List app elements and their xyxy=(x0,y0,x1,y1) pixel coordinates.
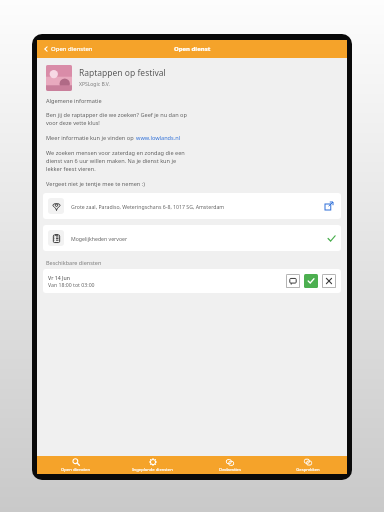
staticText: Gesprekken xyxy=(296,467,320,473)
staticText: XPSLogic B.V. xyxy=(79,81,110,88)
button[interactable]: Open diensten xyxy=(37,42,99,56)
staticText: Van 18:00 tot 03:00 xyxy=(48,281,95,288)
staticText: We zoeken mensen voor zaterdag en zondag… xyxy=(46,149,185,173)
button[interactable]: Accepteren xyxy=(304,274,318,288)
staticText: Open diensten xyxy=(61,467,90,473)
staticText: Vergeet niet je tentje mee te nemen :) xyxy=(46,180,145,188)
staticText: Algemene informatie xyxy=(46,97,102,105)
button[interactable]: Grote zaal, Paradiso, Weteringschans 6-8… xyxy=(43,193,341,219)
staticText: Meer informatie kun je vinden op xyxy=(46,134,136,142)
button[interactable]: Declaraties xyxy=(191,456,269,474)
staticText: Raptappen op festival xyxy=(79,67,166,79)
staticText: Open dienst xyxy=(174,45,211,53)
staticText: Vr 14 Jun xyxy=(48,274,70,281)
staticText: Ingeplande diensten xyxy=(132,467,173,473)
staticText: Mogelijkheden vervoer xyxy=(71,235,327,242)
staticText: Grote zaal, Paradiso, Weteringschans 6-8… xyxy=(71,203,322,210)
button[interactable]: Ingeplande diensten xyxy=(114,456,191,474)
button[interactable]: Open in kaart xyxy=(322,199,336,213)
button[interactable]: Bericht xyxy=(286,274,300,288)
button[interactable]: Gesprekken xyxy=(269,456,347,474)
button[interactable]: www.lowlands.nl xyxy=(136,134,181,142)
staticText: Ben jij de raptapper die we zoeken? Geef… xyxy=(46,111,187,127)
button[interactable]: Afwijzen xyxy=(322,274,336,288)
button[interactable]: Open diensten xyxy=(37,456,114,474)
staticText: Open diensten xyxy=(51,45,93,53)
staticText: Beschikbare diensten xyxy=(46,259,102,266)
button[interactable]: Mogelijkheden vervoer xyxy=(43,225,341,251)
staticText: Declaraties xyxy=(219,467,241,473)
